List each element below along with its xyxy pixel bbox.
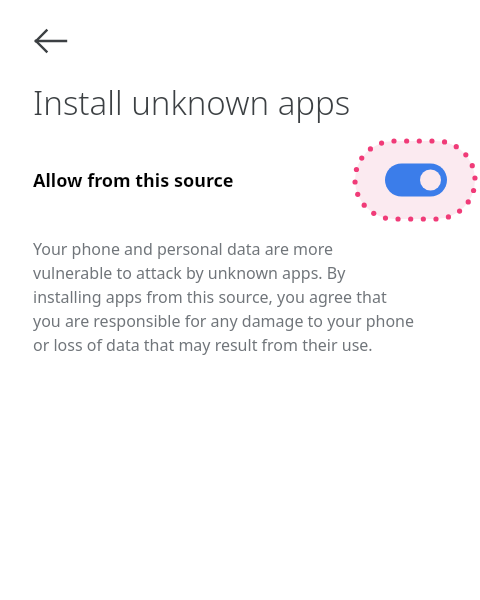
staticText: Install unknown apps [33, 80, 351, 125]
button[interactable]: Back [22, 19, 66, 63]
staticText: Your phone and personal data are more vu… [33, 238, 415, 356]
button[interactable]: Allow from this source toggle [381, 159, 451, 201]
staticText: Allow from this source [33, 168, 234, 193]
